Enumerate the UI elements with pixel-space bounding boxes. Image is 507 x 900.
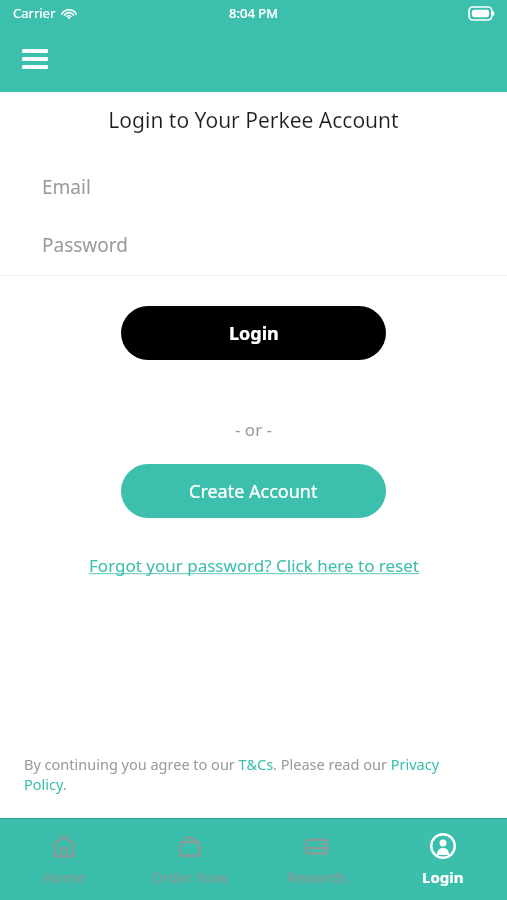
staticText: Login (229, 321, 279, 346)
staticText: Carrier (13, 4, 56, 22)
staticText: 8:04 PM (229, 4, 279, 22)
staticText: Home (43, 867, 86, 887)
button[interactable]: Create Account (121, 464, 386, 518)
staticText: By continuing you agree to our T&Cs. Ple… (24, 754, 483, 794)
button[interactable]: Login (121, 306, 386, 360)
button[interactable]: Login (380, 824, 506, 895)
staticText: Rewards (287, 867, 348, 887)
staticText: Order Now (151, 867, 229, 887)
staticText: - or - (0, 418, 507, 441)
button[interactable]: Home (1, 824, 127, 895)
button[interactable]: By continuing you agree to our T&Cs. Ple… (0, 754, 507, 794)
button[interactable]: Password (0, 226, 507, 264)
staticText: Forgot your password? Click here to rese… (89, 554, 419, 577)
staticText: Email (42, 174, 91, 200)
staticText: Create Account (189, 479, 318, 504)
staticText: Login to Your Perkee Account (0, 106, 507, 135)
staticText: Password (42, 232, 128, 258)
staticText: Login (422, 867, 464, 887)
button[interactable]: Order Now (127, 824, 253, 895)
button[interactable]: Forgot your password? Click here to rese… (83, 550, 425, 581)
button[interactable]: Open navigation menu (14, 41, 56, 77)
button[interactable]: Rewards (254, 824, 380, 895)
button[interactable]: Email (0, 168, 507, 206)
